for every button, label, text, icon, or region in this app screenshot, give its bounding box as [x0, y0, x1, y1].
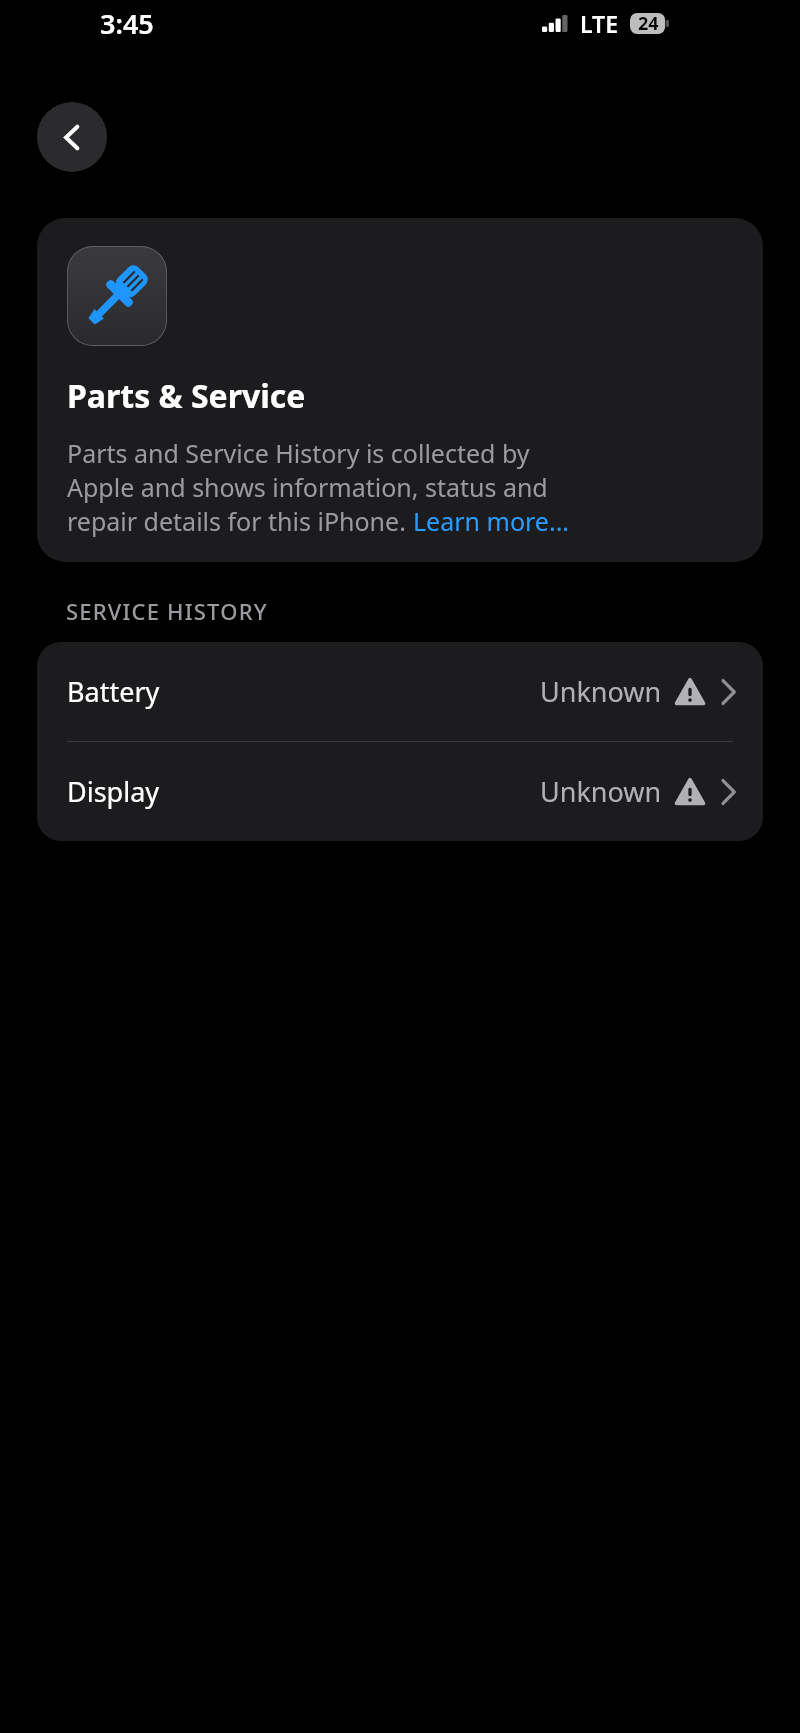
staticText: 24 [638, 11, 659, 36]
staticText: Unknown [540, 773, 662, 810]
staticText: Learn more... [413, 504, 570, 538]
button[interactable]: Battery [37, 642, 763, 741]
staticText: 3:45 [100, 5, 154, 42]
staticText: Display [67, 773, 160, 810]
button[interactable]: Back [37, 102, 107, 172]
button[interactable]: Learn more... [413, 504, 570, 538]
staticText: SERVICE HISTORY [66, 596, 268, 626]
staticText: Apple and shows information, status and [67, 470, 548, 504]
button[interactable]: Display [37, 742, 763, 841]
staticText: repair details for this iPhone. [67, 504, 413, 538]
staticText: LTE [580, 8, 619, 39]
staticText: Parts & Service [67, 374, 306, 418]
staticText: Parts and Service History is collected b… [67, 436, 530, 470]
staticText: Battery [67, 673, 160, 710]
staticText: Unknown [540, 673, 662, 710]
